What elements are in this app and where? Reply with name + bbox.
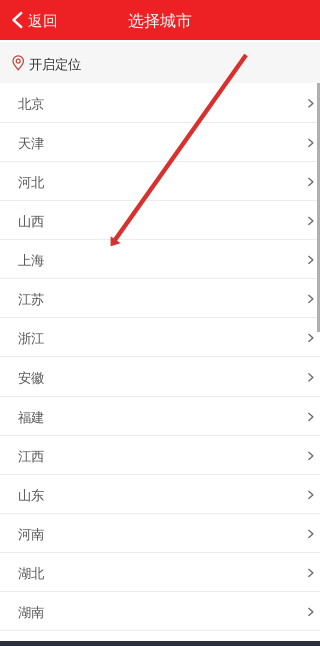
staticText: 安徽 xyxy=(18,370,44,386)
button[interactable]: 山西 xyxy=(0,201,320,240)
button[interactable]: 河北 xyxy=(0,162,320,201)
button[interactable]: 返回 xyxy=(0,0,68,40)
button[interactable]: 浙江 xyxy=(0,318,320,357)
button[interactable]: 上海 xyxy=(0,240,320,279)
button[interactable]: 江西 xyxy=(0,436,320,475)
staticText: 浙江 xyxy=(18,330,44,347)
staticText: 山东 xyxy=(18,487,44,504)
staticText: 山西 xyxy=(18,213,44,230)
staticText: 江苏 xyxy=(18,291,44,308)
button[interactable]: 天津 xyxy=(0,123,320,162)
staticText: 河南 xyxy=(18,526,44,543)
staticText: 河北 xyxy=(18,174,44,191)
button[interactable]: 安徽 xyxy=(0,357,320,397)
button[interactable]: 福建 xyxy=(0,397,320,436)
staticText: 福建 xyxy=(18,409,44,426)
staticText: 湖北 xyxy=(18,565,44,582)
staticText: 开启定位 xyxy=(29,56,81,73)
staticText: 湖南 xyxy=(18,604,44,621)
button[interactable]: 开启定位 xyxy=(0,42,320,83)
staticText: 上海 xyxy=(18,252,44,269)
staticText: 北京 xyxy=(18,96,44,112)
staticText: 选择城市 xyxy=(128,11,192,31)
button[interactable]: 湖北 xyxy=(0,553,320,592)
button[interactable]: 湖南 xyxy=(0,592,320,631)
staticText: 天津 xyxy=(18,135,44,152)
button[interactable]: 山东 xyxy=(0,475,320,514)
staticText: 江西 xyxy=(18,448,44,465)
button[interactable]: 河南 xyxy=(0,514,320,553)
button[interactable]: 江苏 xyxy=(0,279,320,318)
staticText: 返回 xyxy=(28,12,58,30)
button[interactable]: 北京 xyxy=(0,83,320,123)
